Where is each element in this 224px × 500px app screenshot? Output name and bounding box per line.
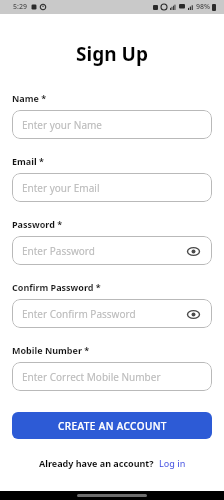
staticText: Password * — [12, 218, 63, 230]
staticText: Email * — [12, 155, 44, 167]
button[interactable]: Enter Password — [12, 236, 212, 265]
staticText: Confirm Password * — [12, 281, 101, 293]
staticText: 98% — [196, 2, 210, 12]
button[interactable]: Toggle Password * visibility — [184, 242, 202, 260]
button[interactable]: Log in — [159, 457, 186, 469]
button[interactable]: Enter Confirm Password — [12, 299, 212, 328]
button[interactable]: Enter your Email — [12, 173, 212, 202]
staticText: Enter your Email — [22, 181, 100, 195]
button[interactable]: Toggle Confirm Password * visibility — [184, 305, 202, 323]
staticText: Already have an account? — [39, 457, 154, 469]
staticText: Sign Up — [12, 41, 212, 67]
staticText: Log in — [159, 457, 186, 469]
staticText: Enter Password — [22, 244, 95, 258]
staticText: Mobile Number * — [12, 344, 90, 356]
staticText: CREATE AN ACCOUNT — [58, 419, 167, 433]
button[interactable]: Enter Correct Mobile Number — [12, 362, 212, 391]
staticText: Enter Confirm Password — [22, 307, 136, 321]
staticText: 5:29 — [13, 2, 27, 12]
staticText: Name * — [12, 92, 47, 104]
staticText: Enter Correct Mobile Number — [22, 370, 161, 384]
button[interactable]: CREATE AN ACCOUNT — [12, 412, 212, 439]
staticText: Enter your Name — [22, 118, 102, 132]
button[interactable]: Enter your Name — [12, 110, 212, 139]
